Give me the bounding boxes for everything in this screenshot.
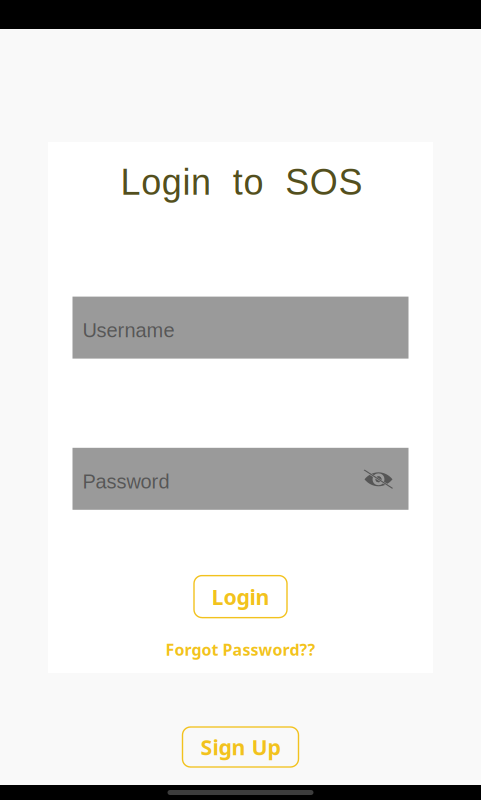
- button[interactable]: Sign Up: [182, 727, 298, 767]
- staticText: Username: [82, 319, 174, 341]
- staticText: Forgot Password??: [165, 639, 315, 660]
- staticText: Sign Up: [200, 732, 280, 762]
- button[interactable]: Forgot Password??: [140, 638, 340, 660]
- staticText: Login: [211, 582, 269, 611]
- staticText: Password: [82, 470, 169, 493]
- button[interactable]: Login: [194, 576, 287, 618]
- button[interactable]: Password: [72, 448, 408, 510]
- staticText: Login to SOS: [121, 162, 362, 202]
- button[interactable]: Username: [72, 297, 408, 359]
